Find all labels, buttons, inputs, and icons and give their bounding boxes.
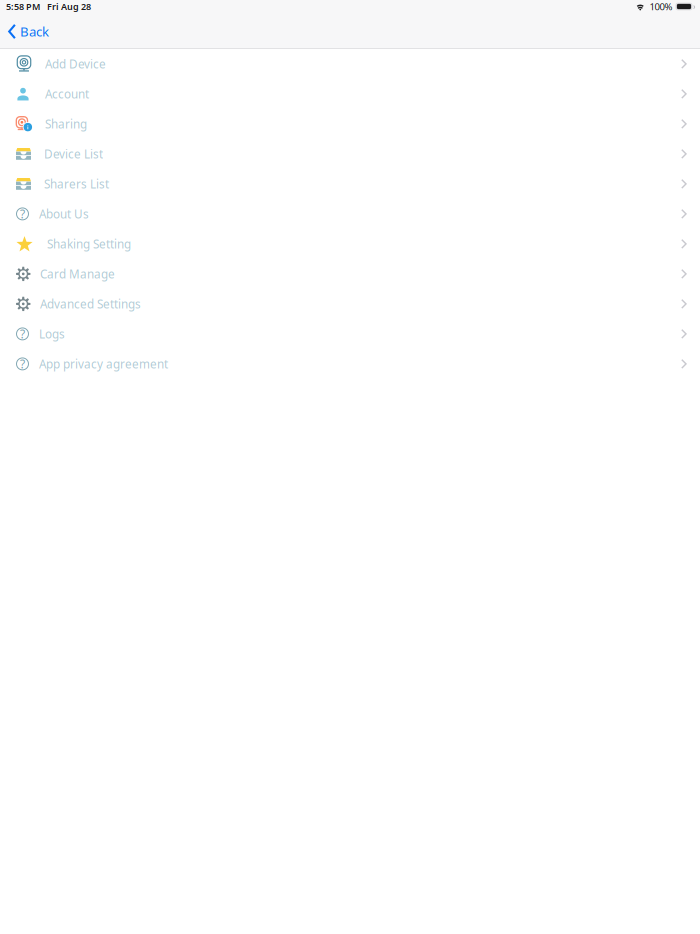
button[interactable]: Sharing (0, 109, 700, 139)
button[interactable]: Card Manage (0, 259, 700, 289)
staticText: Add Device (45, 56, 106, 72)
staticText: Logs (39, 326, 65, 342)
staticText: Advanced Settings (40, 296, 141, 312)
staticText: Fri Aug 28 (47, 0, 91, 13)
staticText: ? (20, 206, 25, 222)
button[interactable]: Sharers List (0, 169, 700, 199)
button[interactable]: ? (0, 319, 700, 349)
button[interactable]: Device List (0, 139, 700, 169)
button[interactable]: Account (0, 79, 700, 109)
staticText: 100% (649, 0, 672, 13)
staticText: Device List (44, 146, 103, 162)
staticText: 5:58 PM (6, 0, 40, 13)
button[interactable]: ? (0, 349, 700, 379)
button[interactable]: Back (0, 17, 57, 48)
staticText: App privacy agreement (39, 356, 168, 372)
button[interactable]: ? (0, 199, 700, 229)
staticText: Shaking Setting (47, 236, 131, 252)
staticText: ? (20, 356, 25, 372)
staticText: Sharing (45, 116, 87, 132)
staticText: Account (45, 86, 89, 102)
button[interactable]: Add Device (0, 49, 700, 79)
button[interactable]: Advanced Settings (0, 289, 700, 319)
button[interactable]: Shaking Setting (0, 229, 700, 259)
staticText: Card Manage (40, 266, 115, 282)
staticText: Sharers List (44, 176, 109, 192)
staticText: ? (20, 326, 25, 342)
staticText: About Us (39, 206, 89, 222)
staticText: Back (20, 22, 49, 40)
